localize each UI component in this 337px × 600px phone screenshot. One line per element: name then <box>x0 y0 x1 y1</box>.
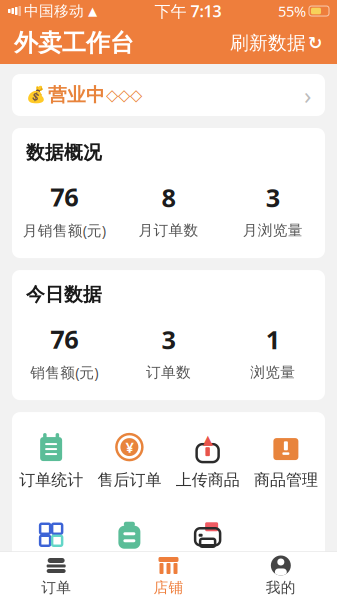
staticText: 订单统计 <box>19 470 83 490</box>
staticText: 76 <box>50 180 78 213</box>
staticText: 3 <box>161 323 175 356</box>
button[interactable]: 💰 <box>12 74 325 116</box>
staticText: 8 <box>161 181 175 214</box>
button[interactable]: 打印设置 <box>168 512 247 585</box>
staticText: 刷新数据 <box>230 31 306 54</box>
button[interactable]: ▲ <box>168 424 247 498</box>
staticText: 规格模版 <box>97 558 161 577</box>
staticText: 💰 <box>26 86 46 104</box>
button[interactable]: 订单 <box>0 550 112 600</box>
staticText: 3 <box>266 181 280 214</box>
button[interactable]: 店铺 <box>112 550 225 600</box>
button[interactable]: 刷新数据 <box>220 25 323 60</box>
staticText: 订单数 <box>146 363 191 381</box>
button[interactable]: ¥ <box>90 424 168 498</box>
button[interactable]: 我的 <box>225 550 337 600</box>
staticText: 1 <box>266 323 280 356</box>
staticText: 订单 <box>41 578 71 596</box>
staticText: ↻ <box>308 33 323 53</box>
staticText: 今日数据 <box>26 283 102 306</box>
staticText: ◇◇◇ <box>106 86 142 104</box>
staticText: ▲ <box>203 432 213 447</box>
staticText: 店铺 <box>153 578 183 596</box>
staticText: 上传商品 <box>176 470 240 490</box>
staticText: 店铺分类 <box>19 558 83 577</box>
staticText: 浏览量 <box>250 363 295 381</box>
staticText: 下午 7:13 <box>154 0 221 22</box>
staticText: 76 <box>50 322 78 356</box>
staticText: 月订单数 <box>138 221 198 239</box>
staticText: 售后订单 <box>97 470 161 490</box>
staticText: 商品管理 <box>254 470 318 490</box>
staticText: 中国移动 <box>24 2 84 20</box>
staticText: ▲ <box>88 4 97 18</box>
staticText: 我的 <box>266 578 296 596</box>
staticText: 55% <box>278 1 306 21</box>
staticText: ¥ <box>125 437 133 457</box>
staticText: 营业中 <box>48 83 105 106</box>
button[interactable]: 订单统计 <box>12 424 90 498</box>
staticText: 销售额(元) <box>30 363 98 382</box>
staticText: 数据概况 <box>26 141 102 164</box>
button[interactable]: 店铺分类 <box>12 512 90 585</box>
button[interactable]: 规格模版 <box>90 512 168 585</box>
button[interactable]: 商品管理 <box>247 424 325 498</box>
staticText: 月浏览量 <box>243 221 303 239</box>
staticText: 外卖工作台 <box>14 28 134 58</box>
staticText: 月销售额(元) <box>23 221 106 240</box>
staticText: › <box>304 79 311 111</box>
staticText: 打印设置 <box>176 558 240 577</box>
